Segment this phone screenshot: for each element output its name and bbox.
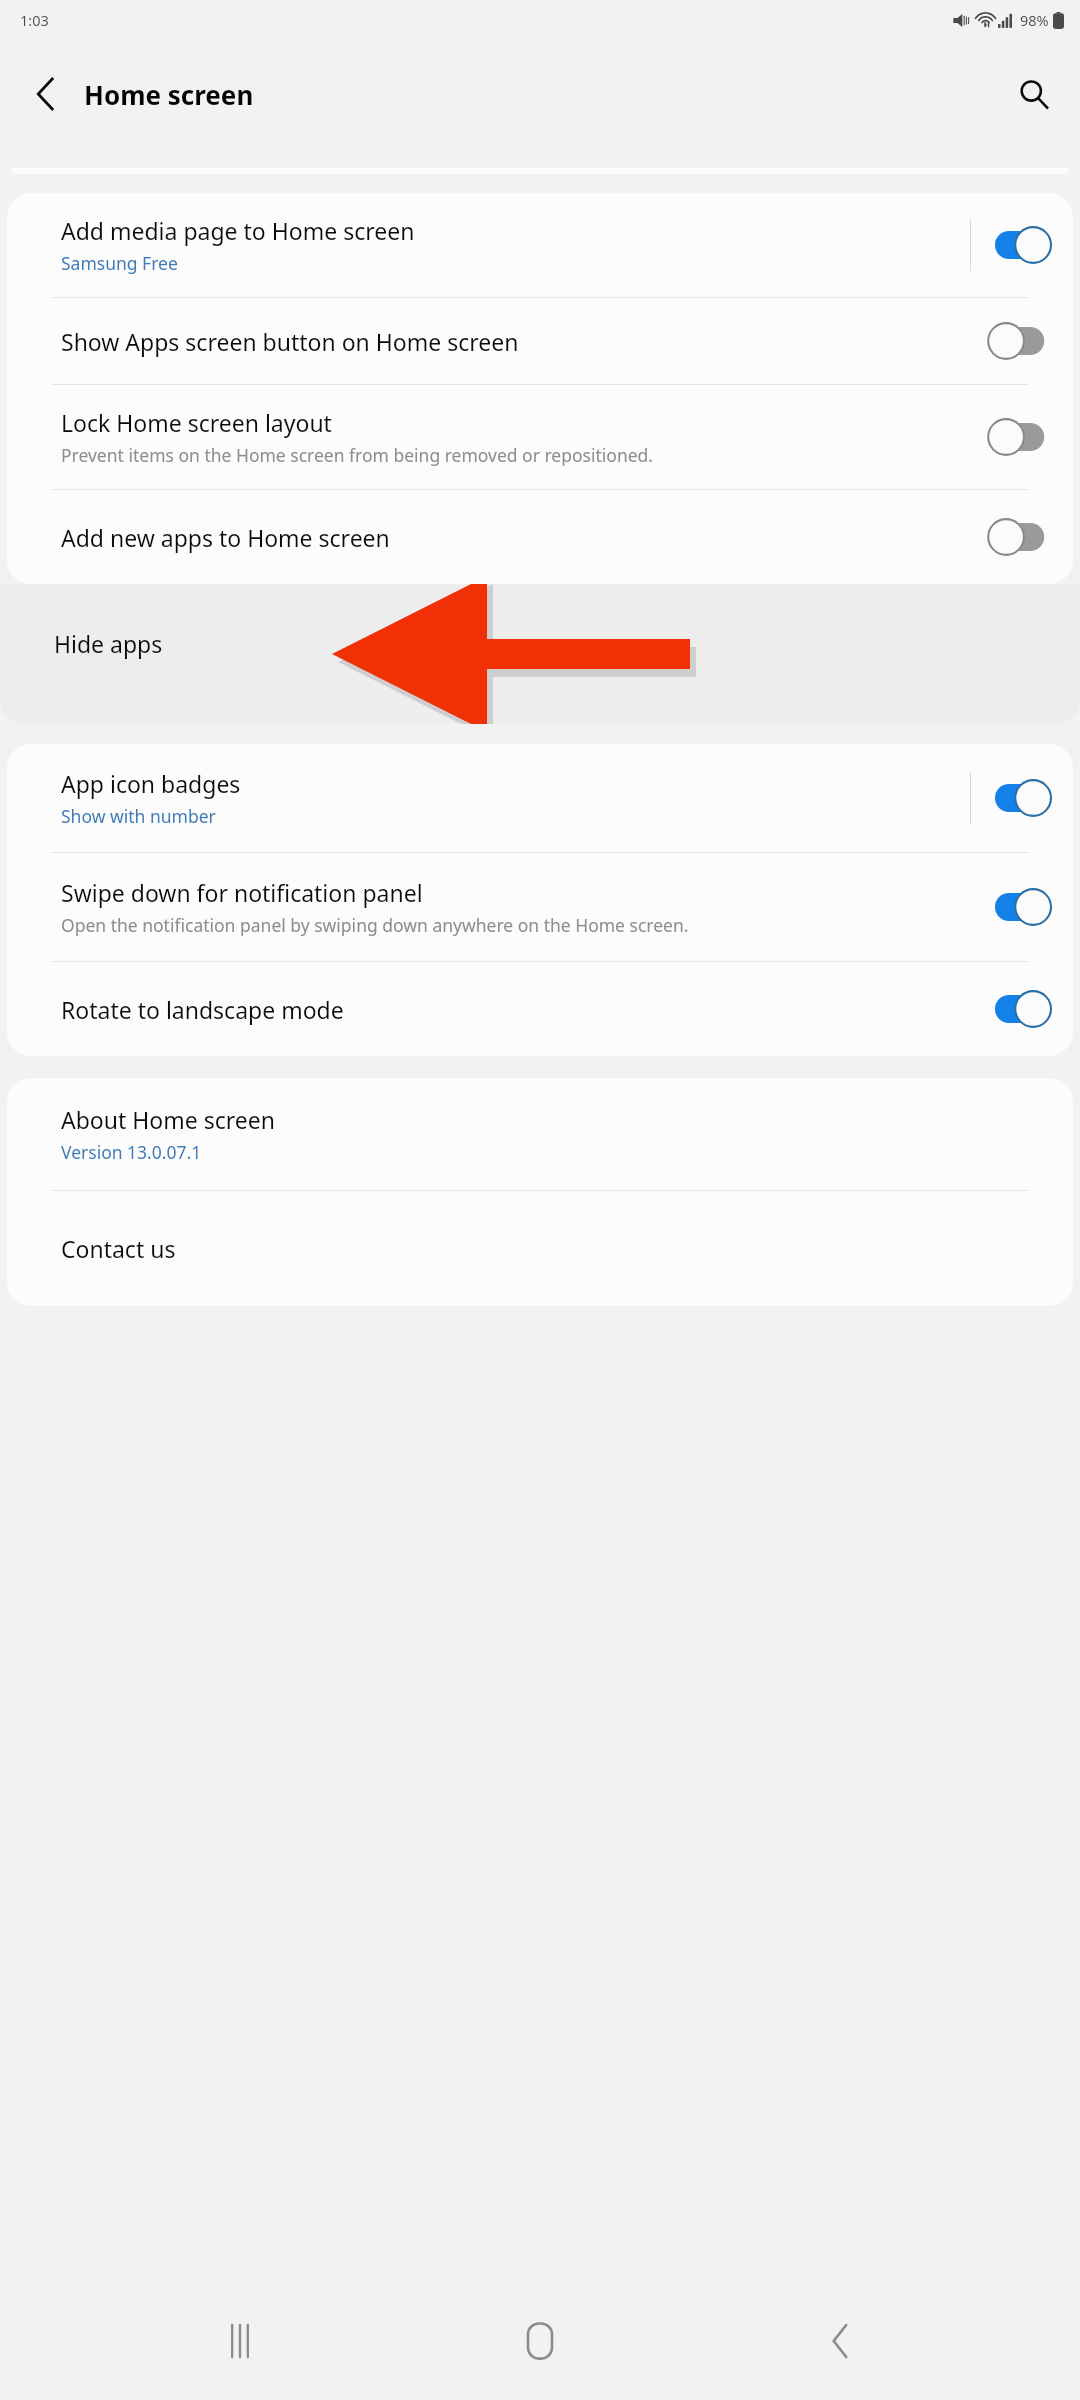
button[interactable]: About Home screen — [7, 1078, 1073, 1190]
staticText: Samsung Free — [61, 251, 178, 275]
staticText: Add media page to Home screen — [61, 215, 415, 246]
button[interactable]: Show Apps screen button on Home screen — [7, 298, 1073, 384]
button[interactable]: Contact us — [7, 1191, 1073, 1306]
staticText: Swipe down for notification panel — [61, 877, 423, 908]
staticText: Contact us — [61, 1233, 176, 1264]
button[interactable]: Back — [780, 2291, 900, 2391]
button[interactable]: Toggle on — [993, 988, 1057, 1030]
staticText: Show Apps screen button on Home screen — [61, 326, 519, 357]
button[interactable]: Swipe down for notification panel — [7, 853, 1073, 961]
staticText: About Home screen — [61, 1104, 275, 1135]
button[interactable]: Toggle off — [993, 416, 1057, 458]
button[interactable]: Hide apps — [0, 584, 1080, 724]
button[interactable]: Rotate to landscape mode — [7, 962, 1073, 1056]
button[interactable]: App icon badges — [7, 744, 1073, 852]
button[interactable]: Recent apps — [180, 2291, 300, 2391]
button[interactable]: Add media page to Home screen — [7, 193, 1073, 297]
button[interactable]: Toggle on — [993, 886, 1057, 928]
button[interactable]: Lock Home screen layout — [7, 385, 1073, 489]
staticText: Show with number — [61, 804, 216, 828]
staticText: App icon badges — [61, 768, 241, 799]
button[interactable]: Back — [20, 68, 72, 120]
button[interactable]: Toggle on — [993, 224, 1057, 266]
staticText: Home screen — [84, 77, 254, 112]
button[interactable]: Toggle off — [993, 320, 1057, 362]
button[interactable]: Toggle off — [993, 516, 1057, 558]
staticText: Prevent items on the Home screen from be… — [61, 443, 654, 467]
button[interactable]: Add new apps to Home screen — [7, 490, 1073, 584]
staticText: Open the notification panel by swiping d… — [61, 913, 689, 937]
staticText: Lock Home screen layout — [61, 407, 332, 438]
staticText: Rotate to landscape mode — [61, 994, 344, 1025]
button[interactable]: Home — [480, 2291, 600, 2391]
staticText: Version 13.0.07.1 — [61, 1140, 202, 1164]
staticText: 1:03 — [20, 10, 49, 30]
staticText: 98% — [1020, 10, 1049, 30]
staticText: Hide apps — [54, 628, 163, 659]
button[interactable]: Search — [1006, 66, 1062, 122]
staticText: Add new apps to Home screen — [61, 522, 390, 553]
button[interactable]: Toggle on — [993, 777, 1057, 819]
